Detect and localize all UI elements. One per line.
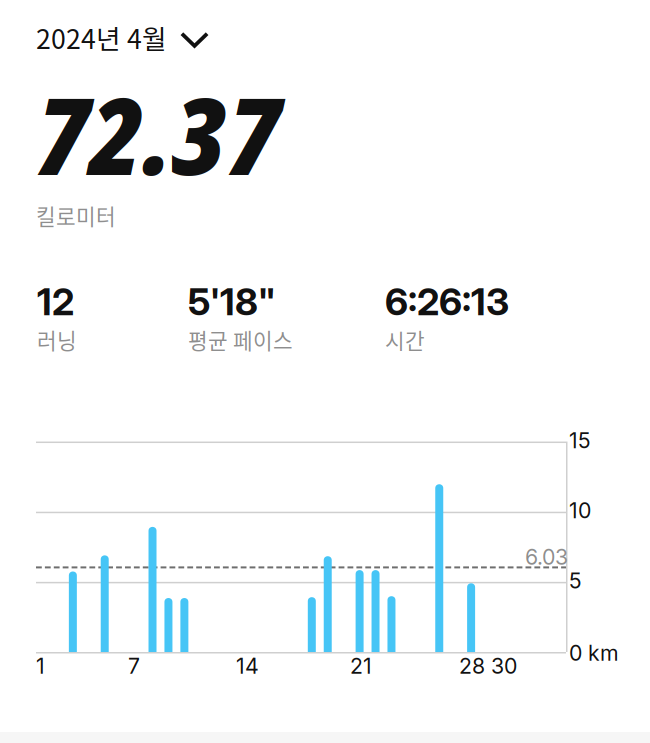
staticText: 12 bbox=[37, 279, 74, 324]
staticText: 72.37 bbox=[35, 61, 280, 206]
staticText: 14 bbox=[236, 653, 259, 679]
staticText: 5 bbox=[569, 568, 582, 594]
staticText: 2024년 4월 bbox=[36, 18, 167, 57]
staticText: 21 bbox=[350, 653, 372, 679]
staticText: 1 bbox=[36, 653, 45, 679]
button[interactable]: 2024년 4월 bbox=[36, 18, 209, 57]
staticText: 10 bbox=[569, 498, 591, 523]
staticText: 6:26:13 bbox=[385, 279, 509, 324]
staticText: 러닝 bbox=[37, 324, 77, 355]
staticText: 7 bbox=[128, 653, 140, 679]
staticText: 시간 bbox=[385, 324, 425, 355]
staticText: 6.03 bbox=[525, 544, 568, 570]
staticText: 15 bbox=[569, 428, 591, 453]
staticText: 평균 페이스 bbox=[188, 324, 293, 355]
staticText: 30 bbox=[491, 653, 517, 679]
staticText: 5'18" bbox=[188, 279, 276, 324]
staticText: 28 bbox=[459, 653, 485, 679]
staticText: 0 km bbox=[569, 640, 619, 666]
staticText: 킬로미터 bbox=[36, 200, 116, 231]
